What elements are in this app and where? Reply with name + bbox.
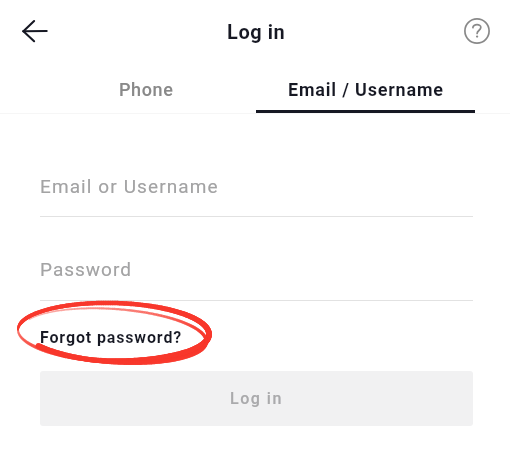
button[interactable]: Email / Username <box>256 66 475 113</box>
button[interactable]: Help <box>457 11 497 51</box>
staticText: Email / Username <box>288 79 444 100</box>
staticText: Phone <box>119 79 174 100</box>
button[interactable]: Back <box>15 11 55 51</box>
staticText: Password <box>40 258 132 280</box>
staticText: Log in <box>230 389 283 408</box>
button[interactable]: Forgot password? <box>40 322 190 350</box>
button[interactable]: Phone <box>37 66 256 113</box>
staticText: Forgot password? <box>40 328 183 347</box>
button[interactable]: Log in <box>40 371 473 426</box>
staticText: Log in <box>227 20 286 43</box>
staticText: Email or Username <box>40 175 219 197</box>
